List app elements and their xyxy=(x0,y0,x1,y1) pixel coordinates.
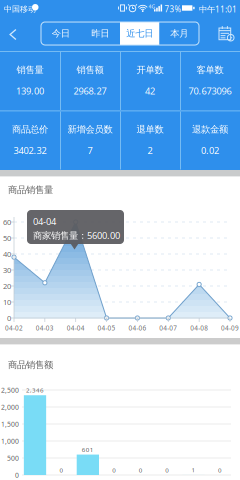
staticText: 50 xyxy=(3,233,11,243)
staticText: 60 xyxy=(3,217,11,227)
staticText: 中国移动 xyxy=(4,4,36,14)
staticText: 04-08 xyxy=(190,324,208,332)
staticText: 2968.27 xyxy=(73,85,106,97)
staticText: 2,500 xyxy=(1,385,19,395)
staticText: 500 xyxy=(7,453,19,463)
staticText: 2 xyxy=(147,144,152,157)
staticText: 今日 xyxy=(52,28,70,39)
staticText: 开单数 xyxy=(136,64,163,76)
staticText: 0 xyxy=(7,313,11,323)
staticText: 商家销售量：5600.00 xyxy=(33,229,120,242)
staticText: 0 xyxy=(218,466,222,474)
staticText: 新增会员数 xyxy=(67,124,112,135)
button[interactable]: 选择日期 xyxy=(219,26,234,41)
staticText: 2,000 xyxy=(1,402,19,412)
staticText: 04-05 xyxy=(98,324,116,332)
staticText: 601 xyxy=(82,445,94,454)
button[interactable]: 返回 xyxy=(0,21,26,47)
staticText: 10 xyxy=(3,297,11,307)
staticText: 退款金额 xyxy=(192,124,228,135)
staticText: 70.673096 xyxy=(188,85,231,97)
staticText: 0 xyxy=(15,470,19,480)
button[interactable]: 今日 xyxy=(41,22,80,45)
staticText: 商品总价 xyxy=(12,124,48,135)
staticText: 2,346 xyxy=(26,386,44,394)
staticText: 7 xyxy=(87,144,92,157)
staticText: 0 xyxy=(112,466,116,474)
staticText: 04-04 xyxy=(33,215,56,228)
staticText: 销售量 xyxy=(16,64,43,76)
staticText: 1,000 xyxy=(1,436,19,446)
staticText: 中午11:01 xyxy=(199,3,237,15)
staticText: 73% xyxy=(164,4,181,14)
staticText: 0 xyxy=(139,466,143,474)
staticText: 商品销售额 xyxy=(8,359,53,371)
staticText: 本月 xyxy=(170,28,188,39)
staticText: 近七日 xyxy=(126,28,153,39)
button[interactable]: 近七日 xyxy=(120,22,159,45)
staticText: 139.00 xyxy=(16,85,44,97)
staticText: 客单数 xyxy=(196,64,223,76)
button[interactable]: 昨日 xyxy=(80,22,120,45)
staticText: 04-09 xyxy=(221,324,239,332)
staticText: 04-07 xyxy=(159,324,177,332)
staticText: 昨日 xyxy=(91,28,109,39)
staticText: 04-06 xyxy=(128,324,146,332)
staticText: 0 xyxy=(59,466,63,474)
staticText: 40 xyxy=(3,249,11,259)
staticText: 30 xyxy=(3,265,11,275)
staticText: 退单数 xyxy=(136,124,163,135)
staticText: 4G xyxy=(148,3,155,10)
staticText: 3402.32 xyxy=(13,144,46,157)
staticText: 销售额 xyxy=(76,64,103,76)
staticText: 04-04 xyxy=(67,324,85,332)
staticText: 04-02 xyxy=(5,324,23,332)
staticText: 0 xyxy=(165,466,169,474)
staticText: 商品销售量 xyxy=(8,184,53,196)
staticText: 20 xyxy=(3,281,11,291)
button[interactable]: 本月 xyxy=(159,22,199,45)
staticText: 1,500 xyxy=(1,419,19,429)
staticText: 42 xyxy=(145,85,155,97)
staticText: 04-03 xyxy=(36,324,54,332)
staticText: 1 xyxy=(192,466,196,474)
staticText: 0.02 xyxy=(201,144,219,157)
